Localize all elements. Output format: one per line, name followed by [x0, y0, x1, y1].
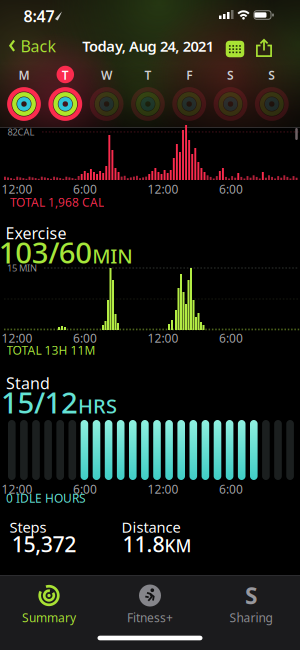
staticText: Sharing: [229, 609, 272, 625]
staticText: Exercise: [5, 222, 66, 244]
button[interactable]: Share: [256, 39, 272, 57]
staticText: 12:00: [1, 181, 32, 197]
staticText: S: [245, 580, 257, 611]
staticText: T: [144, 67, 151, 83]
button[interactable]: Summary: [22, 584, 76, 625]
staticText: Summary: [22, 609, 76, 625]
staticText: 6:00: [219, 181, 243, 197]
button[interactable]: Back: [9, 35, 56, 57]
staticText: S: [227, 67, 234, 83]
staticText: W: [101, 67, 112, 83]
button[interactable]: Day 7: [252, 64, 292, 124]
staticText: KM: [164, 534, 191, 557]
button[interactable]: Fitness+: [127, 584, 173, 625]
staticText: Stand: [6, 372, 50, 394]
staticText: 6:00: [219, 481, 243, 497]
staticText: 0 IDLE HOURS: [6, 490, 86, 506]
staticText: 15,372: [12, 530, 76, 558]
button[interactable]: Day 6: [210, 64, 250, 124]
staticText: Back: [20, 35, 56, 57]
staticText: 6:00: [73, 330, 97, 346]
staticText: 12:00: [147, 181, 178, 197]
button[interactable]: Day 3: [87, 64, 127, 124]
button[interactable]: Calendar: [226, 41, 244, 57]
staticText: S: [268, 67, 275, 83]
staticText: Distance: [121, 517, 180, 537]
staticText: 8:47: [23, 5, 54, 27]
staticText: 103/60: [0, 232, 92, 271]
staticText: 6:00: [73, 481, 97, 497]
staticText: Steps: [9, 517, 46, 537]
button[interactable]: Day 4: [128, 64, 168, 124]
button[interactable]: Day 2: [45, 64, 85, 124]
button[interactable]: Day 1: [4, 64, 44, 124]
staticText: 12:00: [147, 481, 178, 497]
staticText: 6:00: [73, 181, 97, 197]
button[interactable]: Day 5: [169, 64, 209, 124]
staticText: F: [186, 67, 192, 83]
button[interactable]: S: [229, 584, 272, 625]
staticText: MIN: [92, 242, 133, 269]
staticText: Fitness+: [127, 609, 173, 625]
staticText: TOTAL 13H 11M: [6, 342, 95, 358]
staticText: 15 MIN: [7, 262, 37, 274]
staticText: 82CAL: [7, 126, 34, 138]
staticText: 11.8: [122, 530, 164, 558]
staticText: 15/12: [1, 382, 78, 421]
staticText: Today, Aug 24, 2021: [82, 36, 214, 56]
staticText: T: [62, 67, 69, 83]
staticText: HRS: [78, 392, 117, 419]
staticText: 12:00: [1, 481, 32, 497]
staticText: 12:00: [147, 330, 178, 346]
staticText: TOTAL 1,968 CAL: [10, 194, 104, 210]
staticText: 6:00: [219, 330, 243, 346]
staticText: M: [18, 67, 29, 83]
staticText: 12:00: [1, 330, 32, 346]
